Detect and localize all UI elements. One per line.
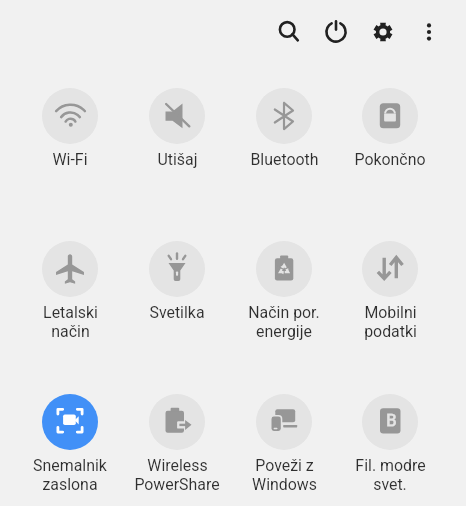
staticText: svet. [373,475,407,494]
staticText: PowerShare [134,475,220,494]
staticText: zaslona [42,475,98,494]
staticText: Svetilka [149,303,205,322]
staticText: Mobilni [364,303,417,322]
staticText: Pokončno [354,150,426,169]
staticText: način [51,322,90,341]
button[interactable]: Wi-Fi [42,88,98,144]
button[interactable]: Mobilni podatki [362,241,418,297]
button[interactable]: Search [266,9,310,53]
staticText: Windows [252,475,317,494]
button[interactable]: Power off [314,10,358,54]
staticText: Bluetooth [250,150,319,169]
button[interactable]: Wireless PowerShare [149,394,205,450]
button[interactable]: Settings [361,10,405,54]
button[interactable]: More options [407,10,451,54]
staticText: Wi-Fi [52,150,88,169]
button[interactable]: Pokončno [362,88,418,144]
staticText: B [386,411,397,430]
button[interactable]: Letalski način [42,241,98,297]
button[interactable]: Snemalnik zaslona [42,394,98,450]
button[interactable]: Filter modre svetlobe [362,394,418,450]
button[interactable]: Poveži z Windows [256,394,312,450]
staticText: Način por. [248,303,320,322]
staticText: Wireless [147,456,208,475]
staticText: Snemalnik [33,456,107,475]
staticText: Poveži z [255,456,314,475]
staticText: Letalski [43,303,98,322]
button[interactable]: Utišaj [149,88,205,144]
staticText: Utišaj [157,150,198,169]
staticText: Fil. modre [355,456,426,475]
button[interactable]: Svetilka [149,241,205,297]
staticText: energije [256,322,312,341]
staticText: podatki [364,322,417,341]
button[interactable]: Bluetooth [256,88,312,144]
button[interactable]: Način porabe energije [256,241,312,297]
